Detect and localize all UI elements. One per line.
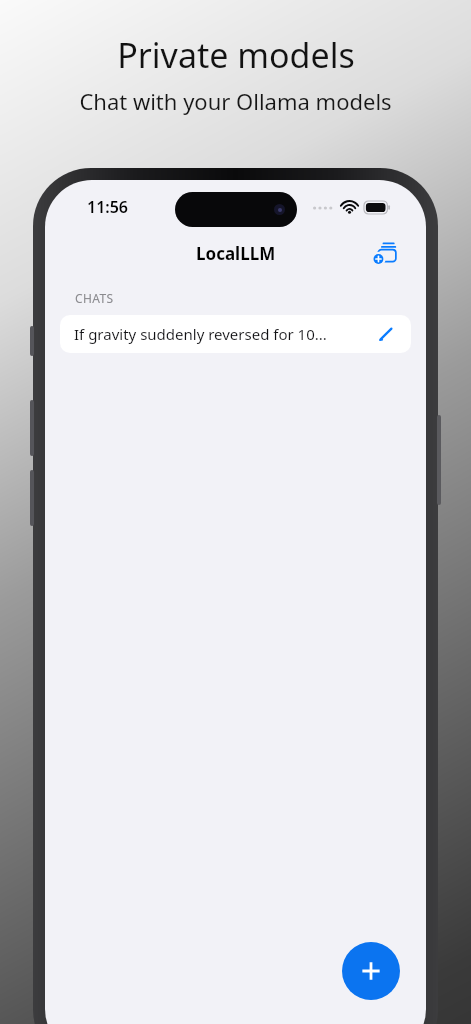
staticText: CHATS [75, 290, 114, 306]
button[interactable]: If gravity suddenly reversed for 10... [60, 315, 411, 353]
staticText: Private models [117, 32, 355, 78]
staticText: LocalLLM [196, 242, 276, 265]
staticText: 11:56 [87, 196, 129, 218]
staticText: If gravity suddenly reversed for 10... [74, 324, 375, 344]
button[interactable]: New chat [368, 235, 404, 271]
button[interactable]: Edit chat title [375, 323, 397, 345]
button[interactable]: New chat [342, 942, 400, 1000]
staticText: Chat with your Ollama models [79, 86, 392, 116]
